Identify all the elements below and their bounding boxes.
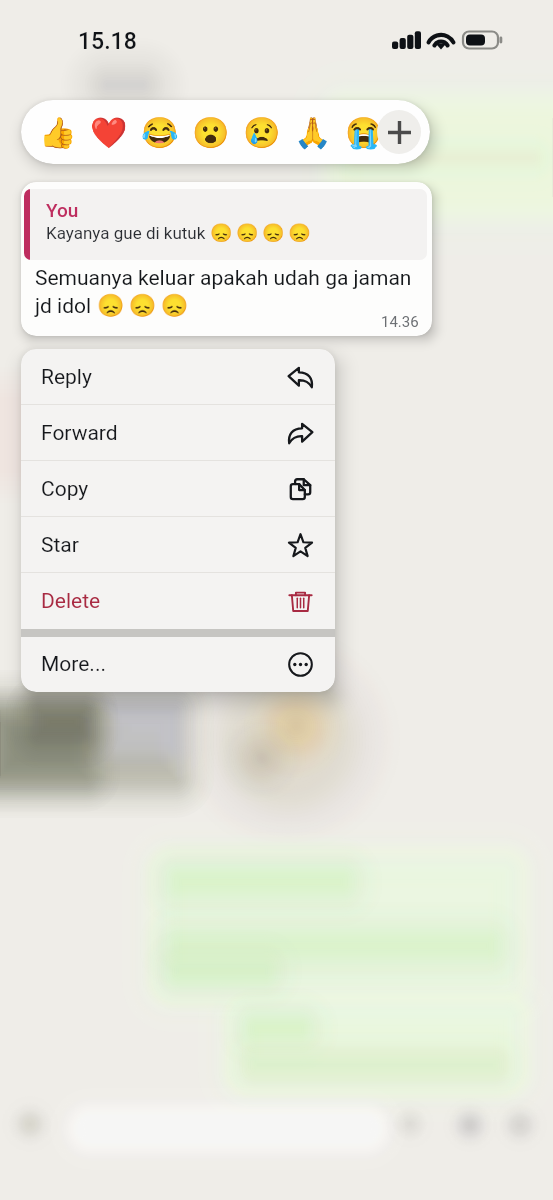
staticText: 🙏 — [294, 115, 332, 150]
button[interactable]: Heart — [85, 100, 133, 164]
button[interactable]: You — [21, 182, 432, 336]
staticText: You — [46, 199, 79, 221]
staticText: Forward — [41, 421, 118, 446]
button[interactable]: Delete — [21, 573, 335, 629]
button[interactable]: Thumbs up — [34, 100, 82, 164]
button[interactable]: Sad — [238, 100, 286, 164]
staticText: Semuanya keluar apakah udah ga jaman — [35, 266, 412, 291]
staticText: 😢 — [243, 115, 281, 150]
staticText: 😭 — [345, 115, 383, 150]
staticText: jd idol — [35, 294, 97, 319]
staticText: More... — [41, 652, 106, 677]
staticText: Delete — [41, 589, 101, 614]
staticText: Copy — [41, 477, 89, 502]
staticText: 14.36 — [381, 313, 419, 331]
button[interactable]: Forward — [21, 405, 335, 461]
button[interactable]: Crying — [340, 100, 388, 164]
staticText: 👍 — [39, 115, 77, 150]
staticText: 😂 — [141, 115, 179, 150]
button[interactable]: Pray — [289, 100, 337, 164]
button[interactable]: More... — [21, 637, 335, 692]
button[interactable]: Laughing — [136, 100, 184, 164]
staticText: ❤️ — [90, 115, 128, 150]
button[interactable]: Reply — [21, 349, 335, 405]
staticText: 😮 — [192, 115, 230, 150]
button[interactable]: Copy — [21, 461, 335, 517]
staticText: Kayanya gue di kutuk — [46, 223, 210, 243]
staticText: 😞 😞 😞 😞 — [210, 222, 311, 243]
button[interactable]: More reactions — [377, 110, 421, 154]
staticText: Reply — [41, 365, 92, 390]
staticText: Star — [41, 533, 79, 558]
button[interactable]: Surprised — [187, 100, 235, 164]
staticText: 😞 😞 😞 — [97, 293, 189, 319]
staticText: 15.18 — [78, 28, 137, 55]
button[interactable]: Star — [21, 517, 335, 573]
